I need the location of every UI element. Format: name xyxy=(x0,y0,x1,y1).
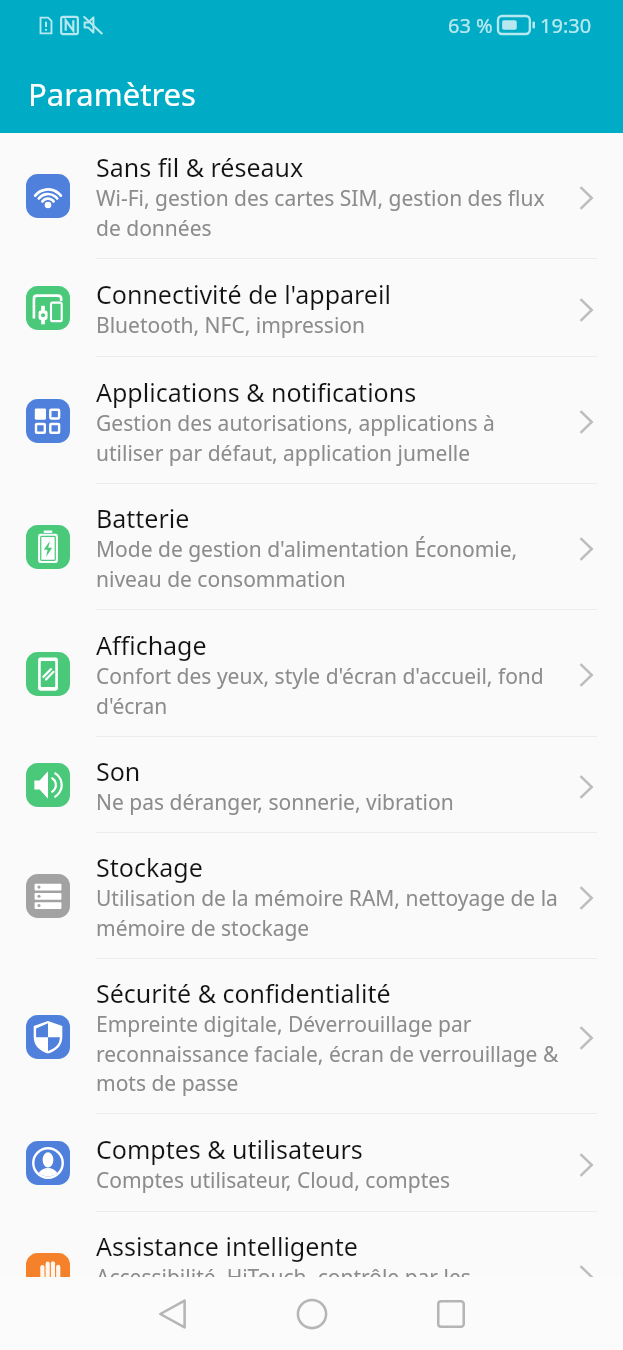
button[interactable]: Recents xyxy=(416,1277,485,1350)
staticText: Comptes & utilisateurs xyxy=(96,1132,363,1166)
button[interactable]: Applications & notifications xyxy=(0,357,623,484)
staticText: Gestion des autorisations, applications … xyxy=(96,409,563,467)
staticText: Connectivité de l'appareil xyxy=(96,277,391,311)
staticText: Confort des yeux, style d'écran d'accuei… xyxy=(96,662,563,720)
button[interactable]: Batterie xyxy=(0,484,623,610)
button[interactable]: Comptes & utilisateurs xyxy=(0,1114,623,1212)
button[interactable]: Affichage xyxy=(0,610,623,737)
staticText: Assistance intelligente xyxy=(96,1229,358,1263)
button[interactable]: Home xyxy=(277,1277,346,1350)
staticText: Wi-Fi, gestion des cartes SIM, gestion d… xyxy=(96,184,563,242)
staticText: Son xyxy=(96,754,141,788)
staticText: Ne pas déranger, sonnerie, vibration xyxy=(96,788,454,817)
button[interactable]: Son xyxy=(0,737,623,833)
staticText: Batterie xyxy=(96,501,190,535)
staticText: Paramètres xyxy=(28,73,196,115)
staticText: Applications & notifications xyxy=(96,375,417,409)
staticText: Affichage xyxy=(96,628,207,662)
staticText: Mode de gestion d'alimentation Économie,… xyxy=(96,535,563,593)
staticText: Bluetooth, NFC, impression xyxy=(96,311,366,340)
button[interactable]: Connectivité de l'appareil xyxy=(0,259,623,357)
staticText: 19:30 xyxy=(540,12,592,39)
staticText: Accessibilité, HiTouch, contrôle par les… xyxy=(96,1263,563,1277)
staticText: Comptes utilisateur, Cloud, comptes xyxy=(96,1166,451,1195)
button[interactable]: Assistance intelligente xyxy=(0,1212,623,1277)
staticText: Utilisation de la mémoire RAM, nettoyage… xyxy=(96,884,563,942)
staticText: Sécurité & confidentialité xyxy=(96,976,391,1010)
staticText: Sans fil & réseaux xyxy=(96,150,304,184)
button[interactable]: Sécurité & confidentialité xyxy=(0,959,623,1114)
button[interactable]: Stockage xyxy=(0,833,623,959)
button[interactable]: Sans fil & réseaux xyxy=(0,133,623,259)
staticText: Empreinte digitale, Déverrouillage par r… xyxy=(96,1010,563,1097)
button[interactable]: Back xyxy=(137,1277,206,1350)
staticText: 63 % xyxy=(448,12,493,39)
staticText: Stockage xyxy=(96,850,203,884)
